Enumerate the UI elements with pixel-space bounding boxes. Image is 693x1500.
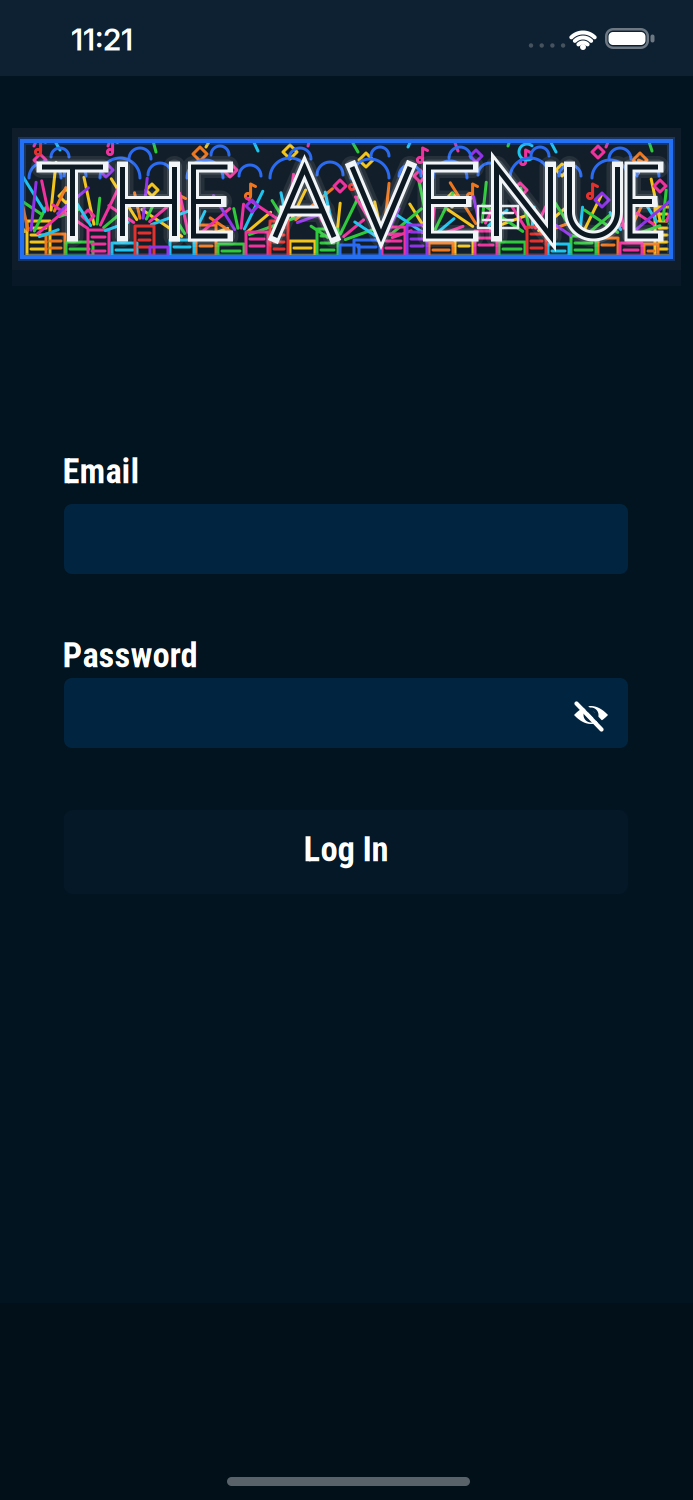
button[interactable]: Password bbox=[64, 678, 628, 748]
button[interactable]: Log In bbox=[64, 810, 628, 894]
staticText: 11:21 bbox=[71, 21, 133, 58]
staticText: Password bbox=[62, 635, 197, 676]
staticText: Log In bbox=[303, 829, 388, 870]
staticText: Email bbox=[62, 451, 139, 492]
button[interactable]: Show password bbox=[562, 685, 618, 741]
